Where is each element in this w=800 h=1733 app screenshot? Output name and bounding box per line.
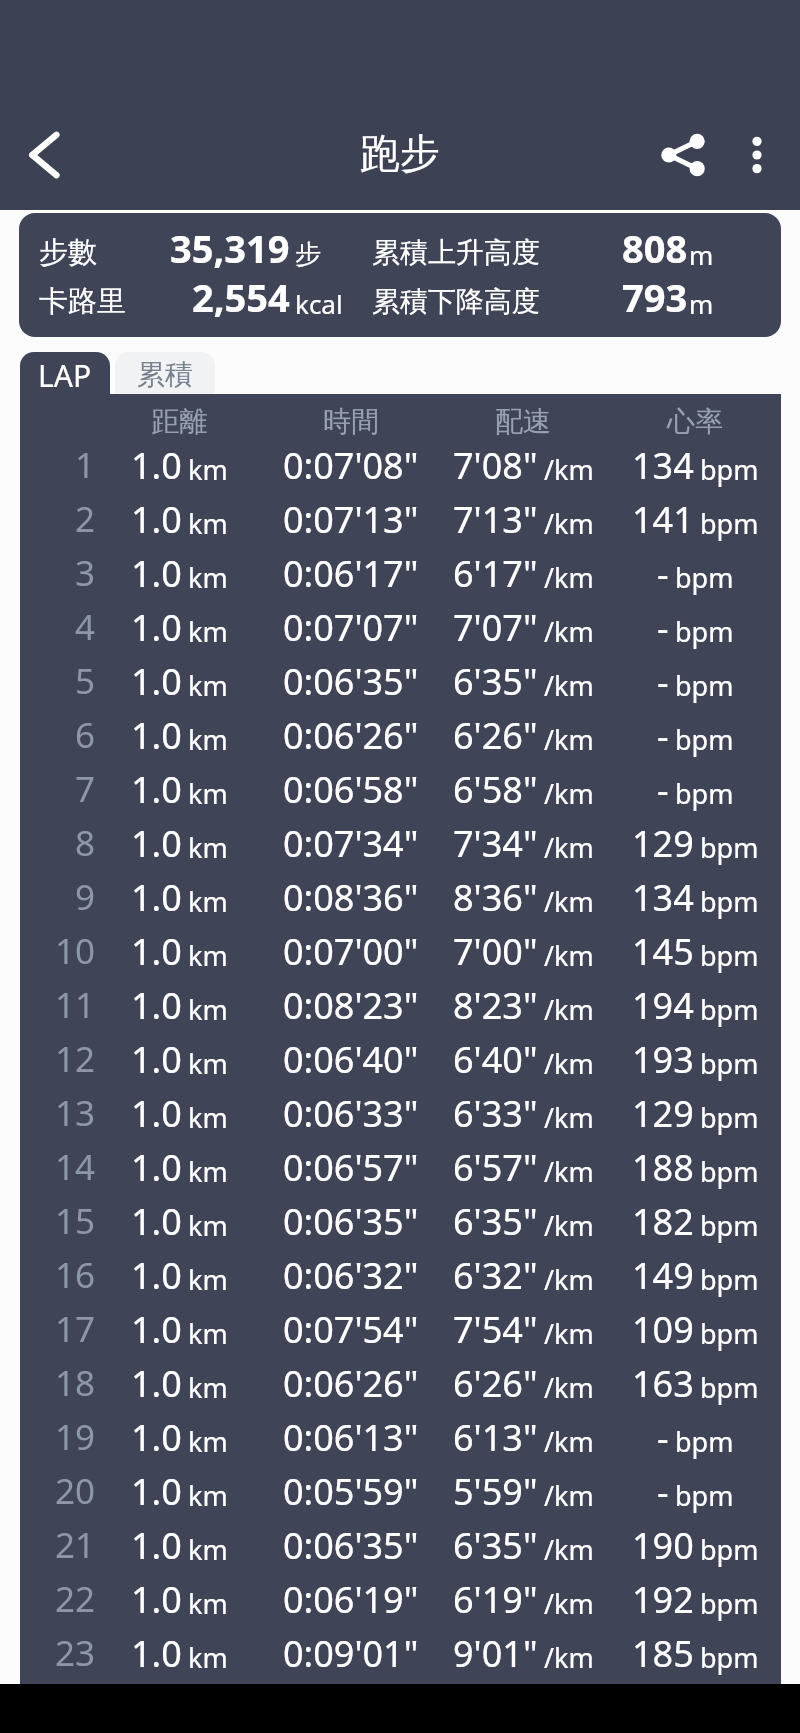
staticText: 1.0 (131, 1035, 182, 1084)
staticText: LAP (38, 355, 92, 394)
staticText: 1.0 (131, 1089, 182, 1138)
button[interactable]: More options (722, 120, 792, 190)
staticText: 7'13" (453, 495, 538, 544)
staticText: /km (544, 559, 594, 596)
staticText: 1 (75, 441, 96, 489)
staticText: 1.0 (131, 441, 182, 490)
staticText: kcal (295, 286, 343, 321)
button[interactable]: 1 (20, 438, 781, 492)
staticText: m (689, 237, 714, 272)
staticText: 距離 (94, 404, 265, 438)
button[interactable]: 3 (20, 546, 781, 600)
button[interactable]: 13 (20, 1086, 781, 1140)
staticText: bpm (700, 1531, 759, 1568)
staticText: 6'40" (453, 1035, 538, 1084)
staticText: 11 (55, 981, 96, 1029)
button[interactable]: Back (6, 116, 84, 194)
button[interactable]: 16 (20, 1248, 781, 1302)
staticText: - (657, 657, 669, 706)
staticText: 129 (632, 819, 694, 868)
staticText: - (657, 711, 669, 760)
staticText: bpm (700, 1099, 759, 1136)
button[interactable]: 14 (20, 1140, 781, 1194)
button[interactable]: 18 (20, 1356, 781, 1410)
button[interactable]: LAP (20, 352, 110, 394)
button[interactable]: 累積 (115, 352, 215, 394)
staticText: - (657, 1467, 669, 1516)
staticText: km (188, 1261, 228, 1298)
staticText: km (188, 559, 228, 596)
staticText: km (188, 991, 228, 1028)
staticText: km (188, 829, 228, 866)
button[interactable]: 2 (20, 492, 781, 546)
staticText: km (188, 775, 228, 812)
staticText: 配速 (437, 404, 609, 438)
button[interactable]: Share (644, 116, 722, 194)
button[interactable]: 7 (20, 762, 781, 816)
staticText: 35,319 (170, 222, 290, 271)
staticText: bpm (675, 559, 734, 596)
staticText: 累積 (137, 357, 193, 392)
button[interactable]: 23 (20, 1626, 781, 1680)
staticText: 12 (55, 1035, 96, 1083)
staticText: 6'17" (453, 549, 538, 598)
staticText: bpm (700, 1045, 759, 1082)
button[interactable]: 11 (20, 978, 781, 1032)
staticText: /km (544, 613, 594, 650)
button[interactable]: 6 (20, 708, 781, 762)
staticText: 1.0 (131, 1521, 182, 1570)
staticText: km (188, 613, 228, 650)
staticText: 6'35" (453, 1521, 538, 1570)
staticText: bpm (700, 451, 759, 488)
button[interactable]: 12 (20, 1032, 781, 1086)
staticText: 1.0 (131, 1305, 182, 1354)
staticText: bpm (700, 1261, 759, 1298)
staticText: - (657, 765, 669, 814)
staticText: /km (544, 1261, 594, 1298)
staticText: bpm (675, 775, 734, 812)
staticText: bpm (700, 937, 759, 974)
button[interactable]: 4 (20, 600, 781, 654)
staticText: 0:06'13" (283, 1413, 419, 1462)
staticText: 跑步 (360, 128, 440, 178)
staticText: bpm (700, 1639, 759, 1676)
staticText: 22 (55, 1575, 96, 1623)
staticText: 5'59" (453, 1467, 538, 1516)
staticText: 1.0 (131, 1629, 182, 1678)
staticText: 1.0 (131, 1197, 182, 1246)
button[interactable]: 8 (20, 816, 781, 870)
staticText: /km (544, 1099, 594, 1136)
staticText: 6'58" (453, 765, 538, 814)
staticText: /km (544, 829, 594, 866)
staticText: 6'19" (453, 1575, 538, 1624)
staticText: 5 (75, 657, 96, 705)
staticText: km (188, 1585, 228, 1622)
button[interactable]: 19 (20, 1410, 781, 1464)
staticText: 0:08'36" (283, 873, 419, 922)
button[interactable]: 17 (20, 1302, 781, 1356)
staticText: 0:06'57" (283, 1143, 419, 1192)
button[interactable]: 9 (20, 870, 781, 924)
staticText: 23 (55, 1629, 96, 1677)
staticText: 0:05'59" (283, 1467, 419, 1516)
staticText: 13 (55, 1089, 96, 1137)
staticText: 1.0 (131, 1413, 182, 1462)
staticText: 8'23" (453, 981, 538, 1030)
button[interactable]: 21 (20, 1518, 781, 1572)
staticText: 808 (622, 222, 688, 271)
staticText: 6'32" (453, 1251, 538, 1300)
staticText: bpm (675, 721, 734, 758)
staticText: 步 (295, 238, 321, 271)
staticText: 7'54" (453, 1305, 538, 1354)
staticText: bpm (700, 1315, 759, 1352)
button[interactable]: 10 (20, 924, 781, 978)
button[interactable]: 22 (20, 1572, 781, 1626)
staticText: 18 (55, 1359, 96, 1407)
staticText: 14 (55, 1143, 96, 1191)
staticText: 6'26" (453, 711, 538, 760)
button[interactable]: 5 (20, 654, 781, 708)
button[interactable]: 20 (20, 1464, 781, 1518)
button[interactable]: 15 (20, 1194, 781, 1248)
staticText: 149 (632, 1251, 694, 1300)
staticText: 步數 (39, 234, 97, 271)
